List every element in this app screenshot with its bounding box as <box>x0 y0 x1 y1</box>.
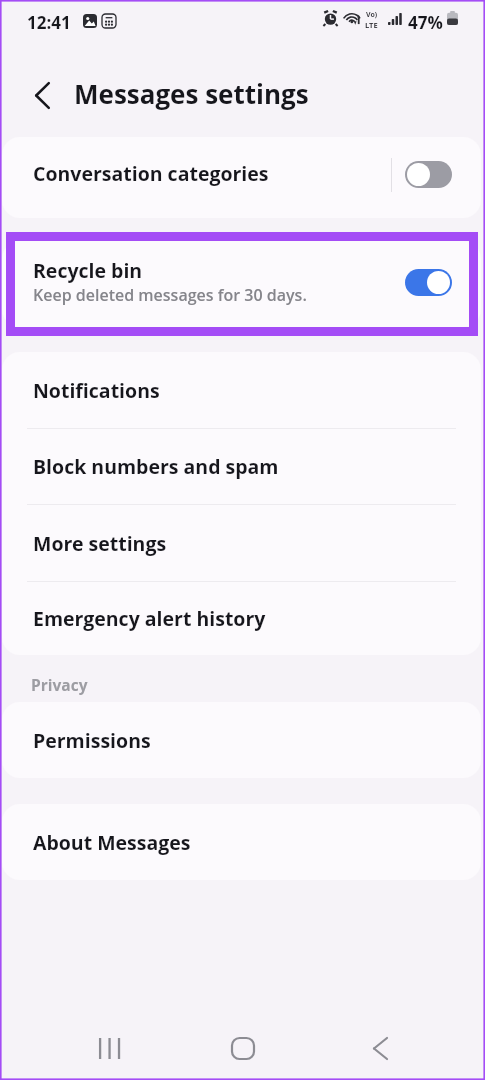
button[interactable]: Switch off <box>405 161 452 188</box>
button[interactable]: Permissions <box>2 702 481 778</box>
button[interactable]: Navigate up <box>18 71 66 119</box>
staticText: Vo) <box>366 10 378 20</box>
button[interactable]: More settings <box>2 505 481 581</box>
button[interactable]: Home <box>207 1023 279 1073</box>
button[interactable]: Notifications <box>2 352 481 428</box>
button[interactable]: Conversation categories <box>2 137 481 218</box>
button[interactable]: Recent apps <box>73 1023 145 1073</box>
staticText: LTE <box>365 20 378 30</box>
button[interactable]: Recycle bin <box>2 241 481 327</box>
staticText: More settings <box>33 530 167 557</box>
button[interactable]: Emergency alert history <box>2 582 481 655</box>
staticText: 12:41 <box>27 11 71 34</box>
staticText: Privacy <box>31 674 88 695</box>
staticText: Messages settings <box>74 76 309 111</box>
staticText: Block numbers and spam <box>33 453 279 480</box>
button[interactable]: About Messages <box>2 804 481 880</box>
staticText: 47% <box>408 11 443 34</box>
button[interactable]: Block numbers and spam <box>2 429 481 504</box>
staticText: Permissions <box>33 727 151 754</box>
button[interactable]: Back <box>344 1023 416 1073</box>
staticText: Recycle bin <box>33 257 143 284</box>
staticText: Emergency alert history <box>33 605 266 632</box>
button[interactable]: Switch on <box>405 269 452 296</box>
staticText: Notifications <box>33 377 160 404</box>
staticText: Keep deleted messages for 30 days. <box>33 284 307 306</box>
staticText: About Messages <box>33 829 191 856</box>
staticText: Conversation categories <box>33 160 269 187</box>
